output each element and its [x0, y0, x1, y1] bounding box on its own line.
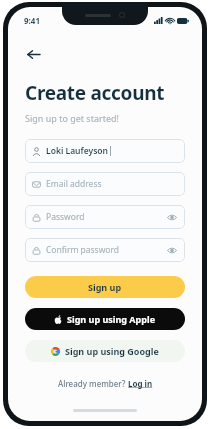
staticText: Sign up using Apple: [67, 313, 156, 325]
button[interactable]: Email address: [25, 172, 185, 196]
staticText: Create account: [25, 80, 165, 106]
staticText: Email address: [46, 178, 102, 190]
button[interactable]: Show password: [166, 211, 178, 223]
staticText: Sign up to get started!: [25, 112, 119, 124]
button[interactable]: Sign up using Google: [25, 340, 185, 362]
staticText: Confirm password: [46, 244, 120, 256]
button[interactable]: Back: [20, 41, 46, 67]
button[interactable]: Sign up using Apple: [25, 308, 185, 330]
button[interactable]: Sign up: [25, 276, 185, 298]
staticText: Log in: [128, 378, 153, 389]
button[interactable]: Loki Laufeyson: [25, 139, 185, 163]
staticText: Password: [46, 211, 85, 223]
staticText: Already member?: [58, 378, 128, 389]
button[interactable]: Log in: [128, 378, 153, 389]
staticText: 9:41: [24, 15, 40, 26]
staticText: Sign up using Google: [65, 345, 159, 357]
button[interactable]: Show password: [166, 244, 178, 256]
button[interactable]: Password: [25, 205, 185, 229]
staticText: Sign up: [88, 281, 122, 293]
staticText: Loki Laufeyson: [46, 145, 109, 157]
button[interactable]: Confirm password: [25, 238, 185, 262]
